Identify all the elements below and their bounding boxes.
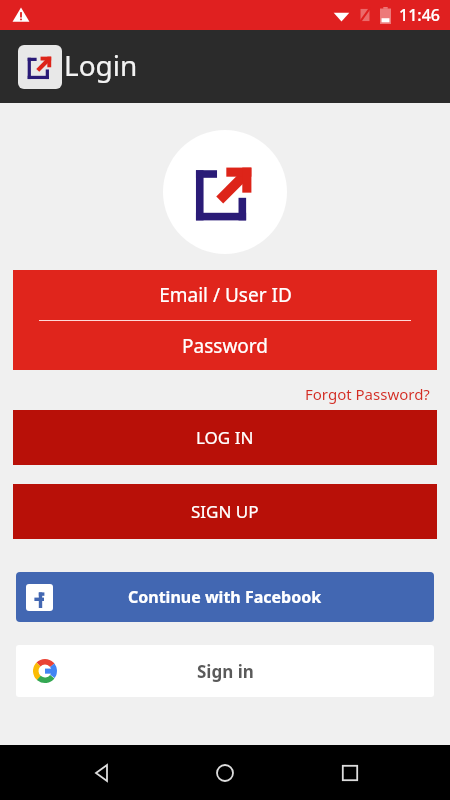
staticText: Login — [64, 46, 138, 84]
button[interactable]: Sign in — [16, 645, 434, 697]
staticText: Password — [182, 333, 268, 359]
button[interactable]: App icon — [18, 45, 62, 89]
button[interactable]: SIGN UP — [13, 484, 437, 539]
button[interactable]: Password — [13, 321, 437, 370]
staticText: Forgot Password? — [305, 384, 430, 404]
button[interactable]: Back — [77, 749, 125, 797]
staticText: 11:46 — [399, 4, 440, 26]
button[interactable]: Recent apps — [326, 749, 374, 797]
staticText: Sign in — [197, 660, 254, 683]
staticText: LOG IN — [196, 426, 254, 449]
button[interactable]: Home — [201, 749, 249, 797]
staticText: Continue with Facebook — [128, 586, 322, 608]
button[interactable]: Continue with Facebook — [16, 572, 434, 622]
button[interactable]: Email / User ID — [13, 270, 437, 320]
staticText: SIGN UP — [191, 500, 259, 523]
staticText: Email / User ID — [159, 282, 292, 308]
button[interactable]: Forgot Password? — [305, 384, 430, 404]
button[interactable]: LOG IN — [13, 410, 437, 465]
